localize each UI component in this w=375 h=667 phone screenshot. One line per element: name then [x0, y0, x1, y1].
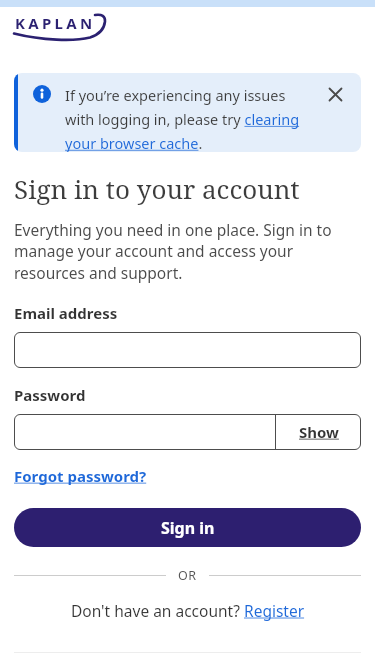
staticText: Don't have an account? — [71, 600, 244, 621]
button[interactable] — [14, 414, 275, 450]
staticText: Everything you need in one place. Sign i… — [14, 219, 332, 284]
staticText: Show — [299, 422, 339, 442]
staticText: Email address — [14, 303, 118, 323]
staticText: If you’re experiencing any issues with l… — [65, 85, 300, 152]
staticText: Sign in — [161, 517, 215, 539]
button[interactable]: Show — [276, 414, 361, 450]
button[interactable]: Forgot password? — [14, 466, 147, 486]
button[interactable] — [329, 88, 342, 101]
staticText: KAPLAN — [15, 13, 96, 33]
button[interactable]: If you’re experiencing any issues with l… — [14, 73, 361, 152]
staticText: Sign in to your account — [14, 171, 300, 206]
button[interactable] — [14, 332, 361, 368]
button[interactable]: Sign in — [14, 508, 361, 547]
staticText: OR — [178, 567, 197, 584]
button[interactable]: Register — [244, 600, 305, 621]
staticText: Password — [14, 385, 86, 405]
button[interactable]: KAPLAN — [14, 6, 126, 48]
